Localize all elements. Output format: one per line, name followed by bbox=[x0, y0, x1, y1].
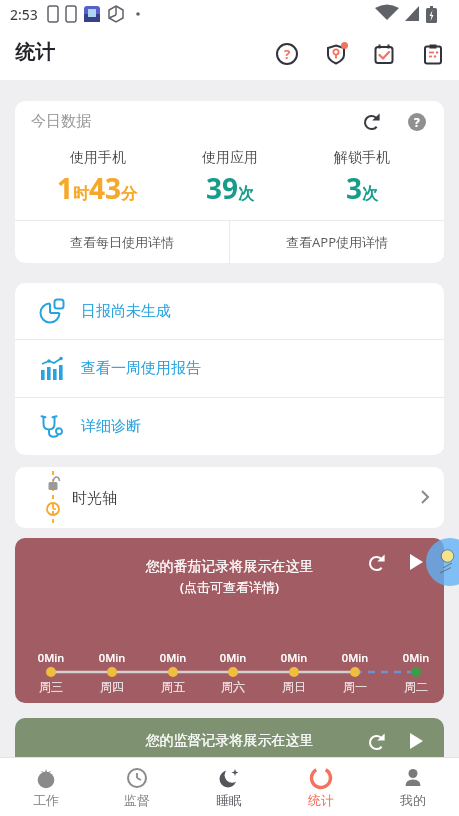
button[interactable]: ? bbox=[408, 113, 426, 131]
staticText: ? bbox=[414, 114, 420, 130]
staticText: 1时43分 bbox=[57, 169, 138, 207]
staticText: 今日数据 bbox=[31, 112, 91, 131]
button[interactable] bbox=[410, 733, 423, 749]
button[interactable]: 查看APP使用详情 bbox=[230, 221, 444, 263]
button[interactable]: 工作 bbox=[0, 758, 91, 816]
staticText: 2:53 bbox=[10, 5, 38, 24]
staticText: 0Min bbox=[153, 650, 193, 665]
button[interactable]: 查看一周使用报告 bbox=[15, 340, 444, 397]
button[interactable]: 日报尚未生成 bbox=[15, 283, 444, 339]
staticText: 0Min bbox=[213, 650, 253, 665]
button[interactable]: 查看每日使用详情 bbox=[15, 221, 229, 263]
button[interactable] bbox=[366, 731, 388, 753]
staticText: 周六 bbox=[213, 679, 253, 694]
staticText: 周日 bbox=[274, 679, 314, 694]
staticText: (点击可查看详情) bbox=[15, 578, 444, 596]
button[interactable] bbox=[366, 552, 388, 574]
button[interactable]: 时光轴 bbox=[15, 467, 444, 528]
button[interactable]: 统计 bbox=[275, 758, 367, 816]
staticText: 我的 bbox=[400, 792, 426, 808]
staticText: 查看每日使用详情 bbox=[70, 234, 174, 250]
staticText: 查看APP使用详情 bbox=[286, 233, 389, 251]
button[interactable]: 睡眠 bbox=[183, 758, 275, 816]
staticText: 睡眠 bbox=[216, 792, 242, 808]
staticText: ? bbox=[284, 45, 291, 63]
staticText: 0Min bbox=[31, 650, 71, 665]
staticText: 您的番茄记录将展示在这里 bbox=[15, 558, 444, 576]
staticText: 日报尚未生成 bbox=[81, 302, 171, 321]
staticText: 监督 bbox=[124, 792, 150, 808]
staticText: 0Min bbox=[92, 650, 132, 665]
staticText: 3次 bbox=[346, 169, 379, 207]
button[interactable]: 我的 bbox=[367, 758, 459, 816]
staticText: 使用手机 bbox=[70, 149, 126, 167]
staticText: 统计 bbox=[308, 792, 334, 808]
staticText: 0Min bbox=[335, 650, 375, 665]
button[interactable]: 您的监督记录将展示在这里 bbox=[15, 718, 444, 816]
staticText: 查看一周使用报告 bbox=[81, 359, 201, 378]
staticText: 时光轴 bbox=[72, 489, 117, 508]
button[interactable] bbox=[361, 111, 383, 133]
staticText: 周一 bbox=[335, 679, 375, 694]
button[interactable] bbox=[325, 43, 347, 65]
button[interactable] bbox=[422, 43, 444, 65]
staticText: 统计 bbox=[15, 40, 55, 65]
button[interactable]: 详细诊断 bbox=[15, 398, 444, 455]
staticText: 0Min bbox=[396, 650, 436, 665]
staticText: 周三 bbox=[31, 679, 71, 694]
staticText: 使用应用 bbox=[202, 149, 258, 167]
staticText: 您的监督记录将展示在这里 bbox=[15, 732, 444, 750]
staticText: 周五 bbox=[153, 679, 193, 694]
staticText: 0Min bbox=[274, 650, 314, 665]
staticText: 详细诊断 bbox=[81, 417, 141, 436]
button[interactable]: ? bbox=[276, 43, 298, 65]
staticText: 解锁手机 bbox=[334, 149, 390, 167]
button[interactable] bbox=[410, 554, 423, 570]
staticText: 周二 bbox=[396, 679, 436, 694]
staticText: 周四 bbox=[92, 679, 132, 694]
button[interactable] bbox=[373, 43, 395, 65]
button[interactable]: 您的番茄记录将展示在这里 bbox=[15, 538, 444, 703]
button[interactable] bbox=[426, 538, 459, 586]
staticText: 39次 bbox=[206, 169, 255, 207]
button[interactable]: 监督 bbox=[91, 758, 183, 816]
staticText: 工作 bbox=[33, 792, 59, 808]
